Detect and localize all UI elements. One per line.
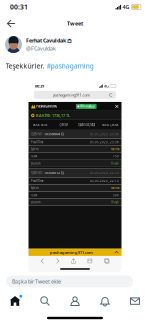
staticText: PARA YATIR [33, 123, 48, 127]
staticText: 750 [113, 154, 119, 158]
staticText: 500 [113, 193, 119, 197]
staticText: PASHAGAMING [36, 105, 57, 108]
staticText: 10358012 [44, 171, 60, 175]
button[interactable]: Search [30, 293, 60, 309]
button[interactable]: Notifications [90, 293, 120, 309]
staticText: #pashagaming [46, 61, 93, 70]
staticText: İŞLEM GEÇMİŞİ [78, 123, 95, 127]
staticText: Ferhat Cavuldak [26, 37, 66, 44]
button[interactable]: Başka bir Tweet ekle [0, 275, 150, 287]
staticText: Tutar [31, 154, 37, 158]
staticText: BAKİYE: 1736,17 TL [36, 113, 70, 118]
button[interactable]: Home [0, 293, 30, 309]
staticText: pashagaming911.com [53, 92, 91, 98]
staticText: Tutar [31, 193, 37, 197]
button[interactable]: Messages [120, 293, 150, 309]
staticText: 00:31 [10, 3, 28, 11]
staticText: 10358864 [44, 132, 60, 136]
staticText: Durum [31, 162, 40, 165]
staticText: Teşekkürler. [5, 61, 46, 70]
staticText: Onaylı [111, 200, 119, 204]
staticText: ÇEKİM [59, 123, 67, 127]
staticText: Durum [31, 200, 40, 204]
button[interactable]: Communities [60, 293, 90, 309]
staticText: Onaylı [111, 162, 119, 165]
staticText: Yatırma [111, 147, 119, 151]
staticText: 4G [123, 3, 130, 11]
staticText: pashagaming911.com [50, 250, 93, 255]
staticText: İŞLEM NO: [31, 132, 43, 136]
staticText: PARA ÇEKME [102, 123, 118, 127]
staticText: @FCavuldak [26, 45, 56, 52]
staticText: Başka bir Tweet ekle [12, 278, 61, 285]
button[interactable]: Back [0, 14, 22, 33]
staticText: 05.05.2023, 22:10 [90, 179, 119, 183]
staticText: 05.05.2023, 23:38 [90, 140, 119, 144]
staticText: WhatsApp [80, 105, 95, 108]
staticText: İşlem [31, 186, 38, 190]
staticText: İşlem [31, 147, 38, 151]
staticText: 05.05.2023, 22:10 [90, 171, 119, 175]
staticText: 4G [104, 83, 109, 89]
staticText: 00:39 [35, 83, 44, 89]
staticText: Tweet [67, 20, 83, 27]
staticText: 05.05.2023, 23:38 [90, 132, 119, 136]
staticText: Paid/Time [31, 179, 44, 183]
staticText: İŞLEM NO: [31, 171, 43, 175]
staticText: Yatırma [111, 186, 119, 190]
staticText: Paid/Time [31, 140, 44, 144]
